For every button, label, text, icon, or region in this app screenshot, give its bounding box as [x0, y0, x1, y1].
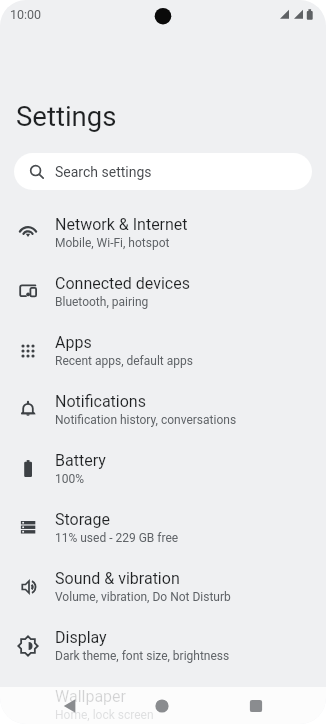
- button[interactable]: Display: [0, 616, 326, 675]
- staticText: Sound & vibration: [55, 569, 180, 588]
- staticText: 10:00: [10, 7, 42, 22]
- button[interactable]: [46, 687, 94, 724]
- staticText: Display: [55, 628, 107, 647]
- staticText: 100%: [55, 472, 85, 486]
- button[interactable]: Notifications: [0, 380, 326, 439]
- button[interactable]: Storage: [0, 498, 326, 557]
- staticText: Apps: [55, 333, 92, 352]
- button[interactable]: Connected devices: [0, 262, 326, 321]
- button[interactable]: Apps: [0, 321, 326, 380]
- button[interactable]: Network & Internet: [0, 203, 326, 262]
- staticText: Network & Internet: [55, 215, 188, 234]
- staticText: Wallpaper: [55, 687, 126, 706]
- staticText: Battery: [55, 451, 106, 470]
- staticText: Connected devices: [55, 274, 190, 293]
- staticText: Notifications: [55, 392, 146, 411]
- button[interactable]: [232, 687, 280, 724]
- button[interactable]: [138, 687, 186, 724]
- staticText: Volume, vibration, Do Not Disturb: [55, 590, 231, 604]
- staticText: Dark theme, font size, brightness: [55, 649, 230, 663]
- staticText: Settings: [16, 100, 117, 132]
- button[interactable]: Battery: [0, 439, 326, 498]
- button[interactable]: Search settings: [14, 153, 312, 190]
- staticText: Notification history, conversations: [55, 413, 237, 427]
- button[interactable]: Wallpaper: [0, 675, 326, 724]
- staticText: Storage: [55, 510, 110, 529]
- staticText: Home, lock screen: [55, 708, 154, 722]
- staticText: 11% used - 229 GB free: [55, 531, 179, 545]
- staticText: Recent apps, default apps: [55, 354, 193, 368]
- staticText: Search settings: [55, 164, 152, 180]
- staticText: Bluetooth, pairing: [55, 295, 149, 309]
- staticText: Mobile, Wi-Fi, hotspot: [55, 236, 170, 250]
- button[interactable]: Sound & vibration: [0, 557, 326, 616]
